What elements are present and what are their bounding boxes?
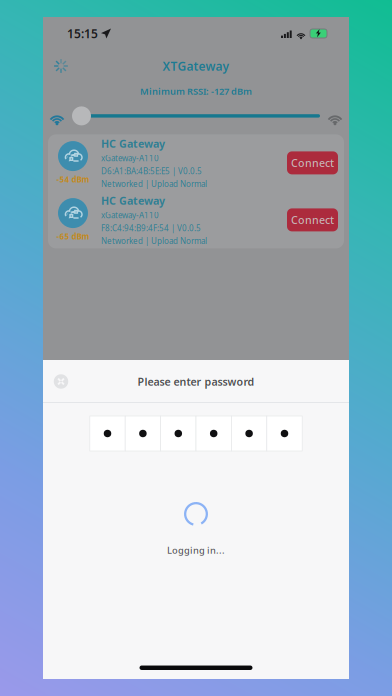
button[interactable]: Connect [287, 151, 338, 174]
staticText: HC Gateway [101, 137, 165, 151]
staticText: XTGateway [162, 58, 229, 74]
staticText: xGateway-A110 [101, 153, 159, 163]
staticText: 15:15 [67, 25, 98, 41]
staticText: Connect [291, 213, 334, 227]
staticText: Networked | Upload Normal [101, 236, 207, 246]
staticText: Networked | Upload Normal [101, 179, 207, 189]
staticText: -65 dBm [56, 231, 89, 242]
staticText: HC Gateway [101, 194, 165, 208]
staticText: -54 dBm [56, 174, 89, 185]
staticText: xGateway-A110 [101, 210, 159, 220]
staticText: Minimum RSSI: -127 dBm [140, 85, 252, 97]
staticText: Connect [291, 156, 334, 170]
staticText: Please enter password [137, 374, 254, 389]
staticText: D6:A1:BA:4B:5E:E5 | V0.0.5 [101, 166, 202, 176]
button[interactable]: Connect [287, 208, 338, 231]
staticText: F8:C4:94:B9:4F:54 | V0.0.5 [101, 223, 201, 233]
button[interactable]: Close [51, 371, 71, 391]
staticText: Logging in... [167, 544, 225, 556]
